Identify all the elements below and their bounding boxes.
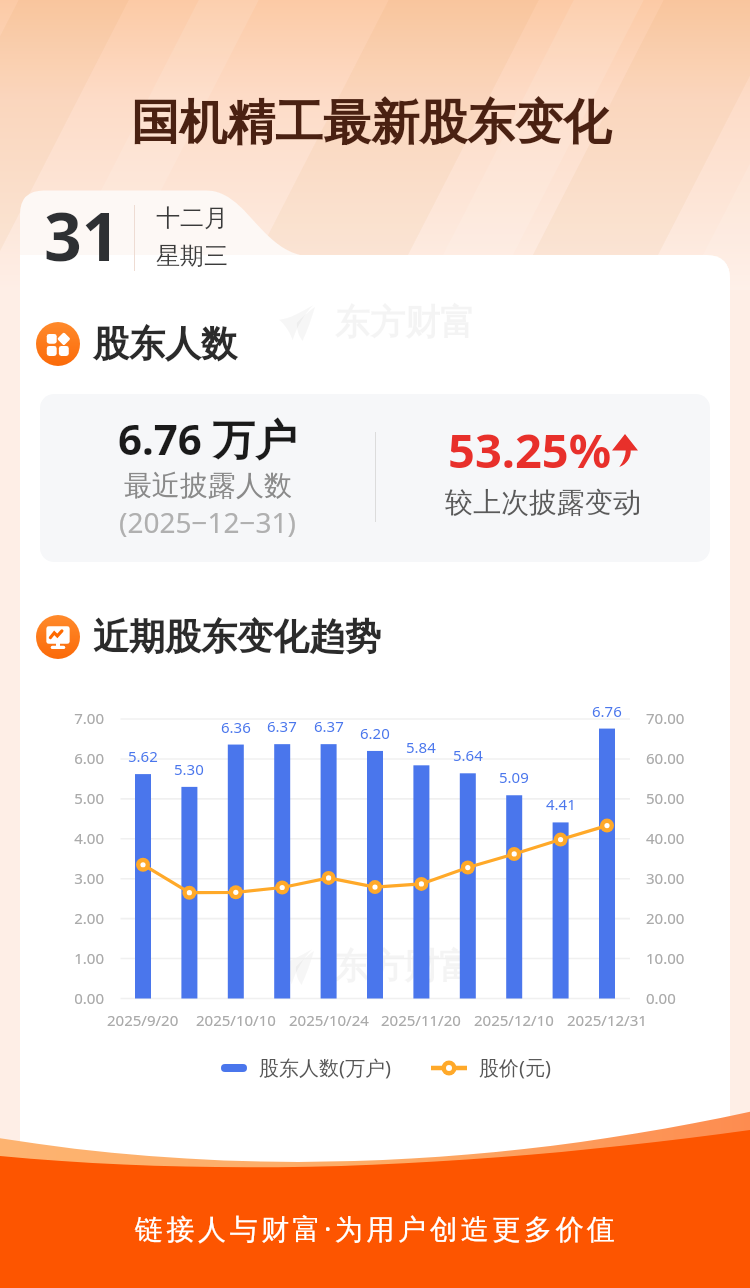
staticText: 40.00	[646, 828, 685, 848]
staticText: 5.84	[406, 737, 436, 757]
staticText: 6.37	[267, 716, 297, 736]
staticText: 7.00	[74, 708, 104, 728]
staticText: 70.00	[646, 708, 685, 728]
staticText: 国机精工最新股东变化	[131, 93, 611, 153]
button[interactable]: 股东变化趋势	[36, 614, 381, 659]
staticText: 较上次披露变动	[445, 485, 641, 520]
staticText: 4.41	[546, 794, 576, 814]
staticText: 53.25%	[448, 418, 612, 482]
staticText: 2025/9/20	[107, 1010, 179, 1030]
staticText: 6.20	[360, 723, 390, 743]
staticText: 4.00	[74, 828, 104, 848]
staticText: 5.64	[453, 745, 483, 765]
staticText: 东方财富	[334, 944, 474, 988]
staticText: 5.09	[499, 767, 529, 787]
staticText: 6.76	[592, 701, 622, 721]
staticText: 31	[44, 190, 120, 280]
staticText: 10.00	[646, 948, 685, 968]
staticText: 2025/11/20	[381, 1010, 461, 1030]
staticText: 星期三	[156, 241, 228, 271]
staticText: 近期股东变化趋势	[93, 614, 381, 659]
other: 股东变化趋势	[36, 615, 80, 659]
staticText: 5.62	[128, 746, 158, 766]
staticText: 30.00	[646, 868, 685, 888]
staticText: 2.00	[74, 908, 104, 928]
staticText: 2025/12/31	[567, 1010, 647, 1030]
staticText: 东方财富	[335, 300, 475, 344]
staticText: 最近披露人数	[124, 468, 292, 503]
staticText: 0.00	[646, 988, 676, 1008]
staticText: 2025/12/10	[474, 1010, 554, 1030]
staticText: 6.00	[74, 748, 104, 768]
staticText: 5.00	[74, 788, 104, 808]
staticText: 十二月	[156, 203, 228, 233]
button[interactable]: 6.76 万户	[40, 394, 710, 562]
staticText: 50.00	[646, 788, 685, 808]
staticText: 2025/10/24	[289, 1010, 369, 1030]
staticText: 链接人与财富·为用户创造更多价值	[135, 1209, 619, 1247]
staticText: 股东人数	[93, 321, 237, 366]
staticText: 1.00	[74, 948, 104, 968]
staticText: 0.00	[74, 988, 104, 1008]
staticText: 6.36	[221, 717, 251, 737]
staticText: 20.00	[646, 908, 685, 928]
staticText: 6.76 万户	[118, 410, 297, 467]
other: 股东人数	[36, 322, 80, 366]
staticText: 5.30	[174, 759, 204, 779]
staticText: 6.37	[314, 716, 344, 736]
staticText: 2025/10/10	[196, 1010, 276, 1030]
staticText: 60.00	[646, 748, 685, 768]
staticText: 股价(元)	[479, 1054, 551, 1081]
staticText: 股东人数(万户)	[259, 1054, 391, 1081]
staticText: 3.00	[74, 868, 104, 888]
button[interactable]: 股东人数	[36, 321, 237, 366]
staticText: (2025−12−31)	[119, 503, 296, 541]
